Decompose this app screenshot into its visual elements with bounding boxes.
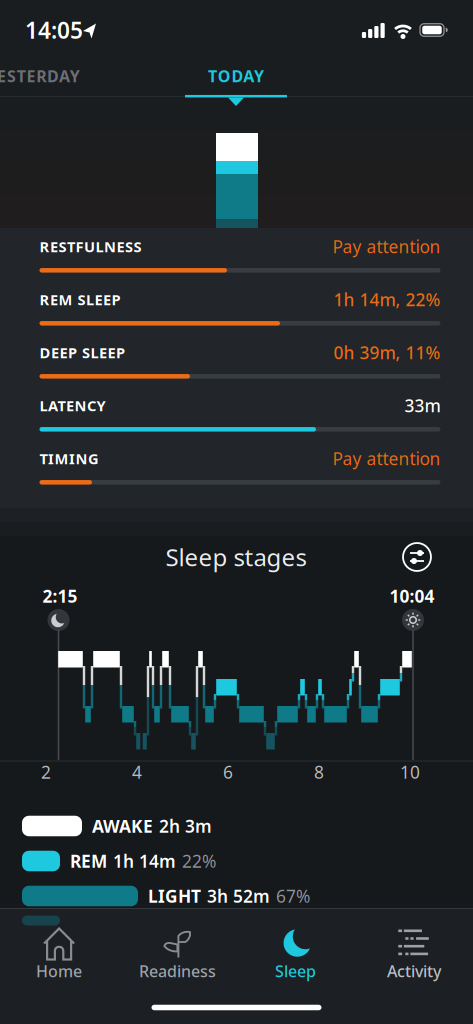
staticText: 2:15	[42, 584, 77, 607]
staticText: 2	[41, 760, 51, 783]
staticText: 10	[400, 760, 420, 783]
staticText: 67%	[276, 884, 310, 907]
staticText: 8	[314, 760, 324, 783]
staticText: 4	[132, 760, 142, 783]
button[interactable]: YESTERDAY	[0, 65, 80, 87]
staticText: LATENCY	[39, 396, 105, 415]
staticText: 3h 52m	[207, 884, 270, 907]
staticText: Sleep	[275, 960, 316, 982]
staticText: REM	[70, 849, 107, 872]
staticText: TIMING	[39, 449, 99, 468]
staticText: 2h 3m	[159, 814, 212, 837]
staticText: DEEP SLEEP	[39, 343, 125, 362]
staticText: AWAKE	[92, 814, 153, 837]
staticText: TODAY	[208, 65, 264, 87]
staticText: REM SLEEP	[39, 290, 120, 309]
staticText: Pay attention	[332, 447, 440, 470]
button[interactable]: Chart options	[395, 535, 439, 579]
staticText: 1h 14m, 22%	[333, 288, 440, 311]
staticText: RESTFULNESS	[39, 237, 141, 256]
staticText: YESTERDAY	[0, 65, 80, 87]
staticText: Home	[36, 960, 82, 982]
staticText: 22%	[182, 849, 216, 872]
staticText: Sleep stages	[165, 541, 306, 573]
button[interactable]: TODAY	[166, 56, 306, 96]
staticText: 0h 39m, 11%	[333, 341, 440, 364]
button[interactable]: Sleep	[237, 908, 355, 1004]
staticText: 33m	[404, 394, 440, 417]
staticText: Activity	[387, 960, 441, 982]
staticText: 6	[223, 760, 233, 783]
button[interactable]: Readiness	[118, 908, 236, 1004]
staticText: Pay attention	[332, 235, 440, 258]
staticText: Readiness	[139, 960, 216, 982]
staticText: 1h 14m	[113, 849, 176, 872]
staticText: 14:05	[25, 15, 83, 45]
button[interactable]: Activity	[355, 908, 473, 1004]
button[interactable]: Home	[0, 908, 118, 1004]
staticText: 10:04	[389, 584, 434, 607]
staticText: LIGHT	[148, 884, 201, 907]
